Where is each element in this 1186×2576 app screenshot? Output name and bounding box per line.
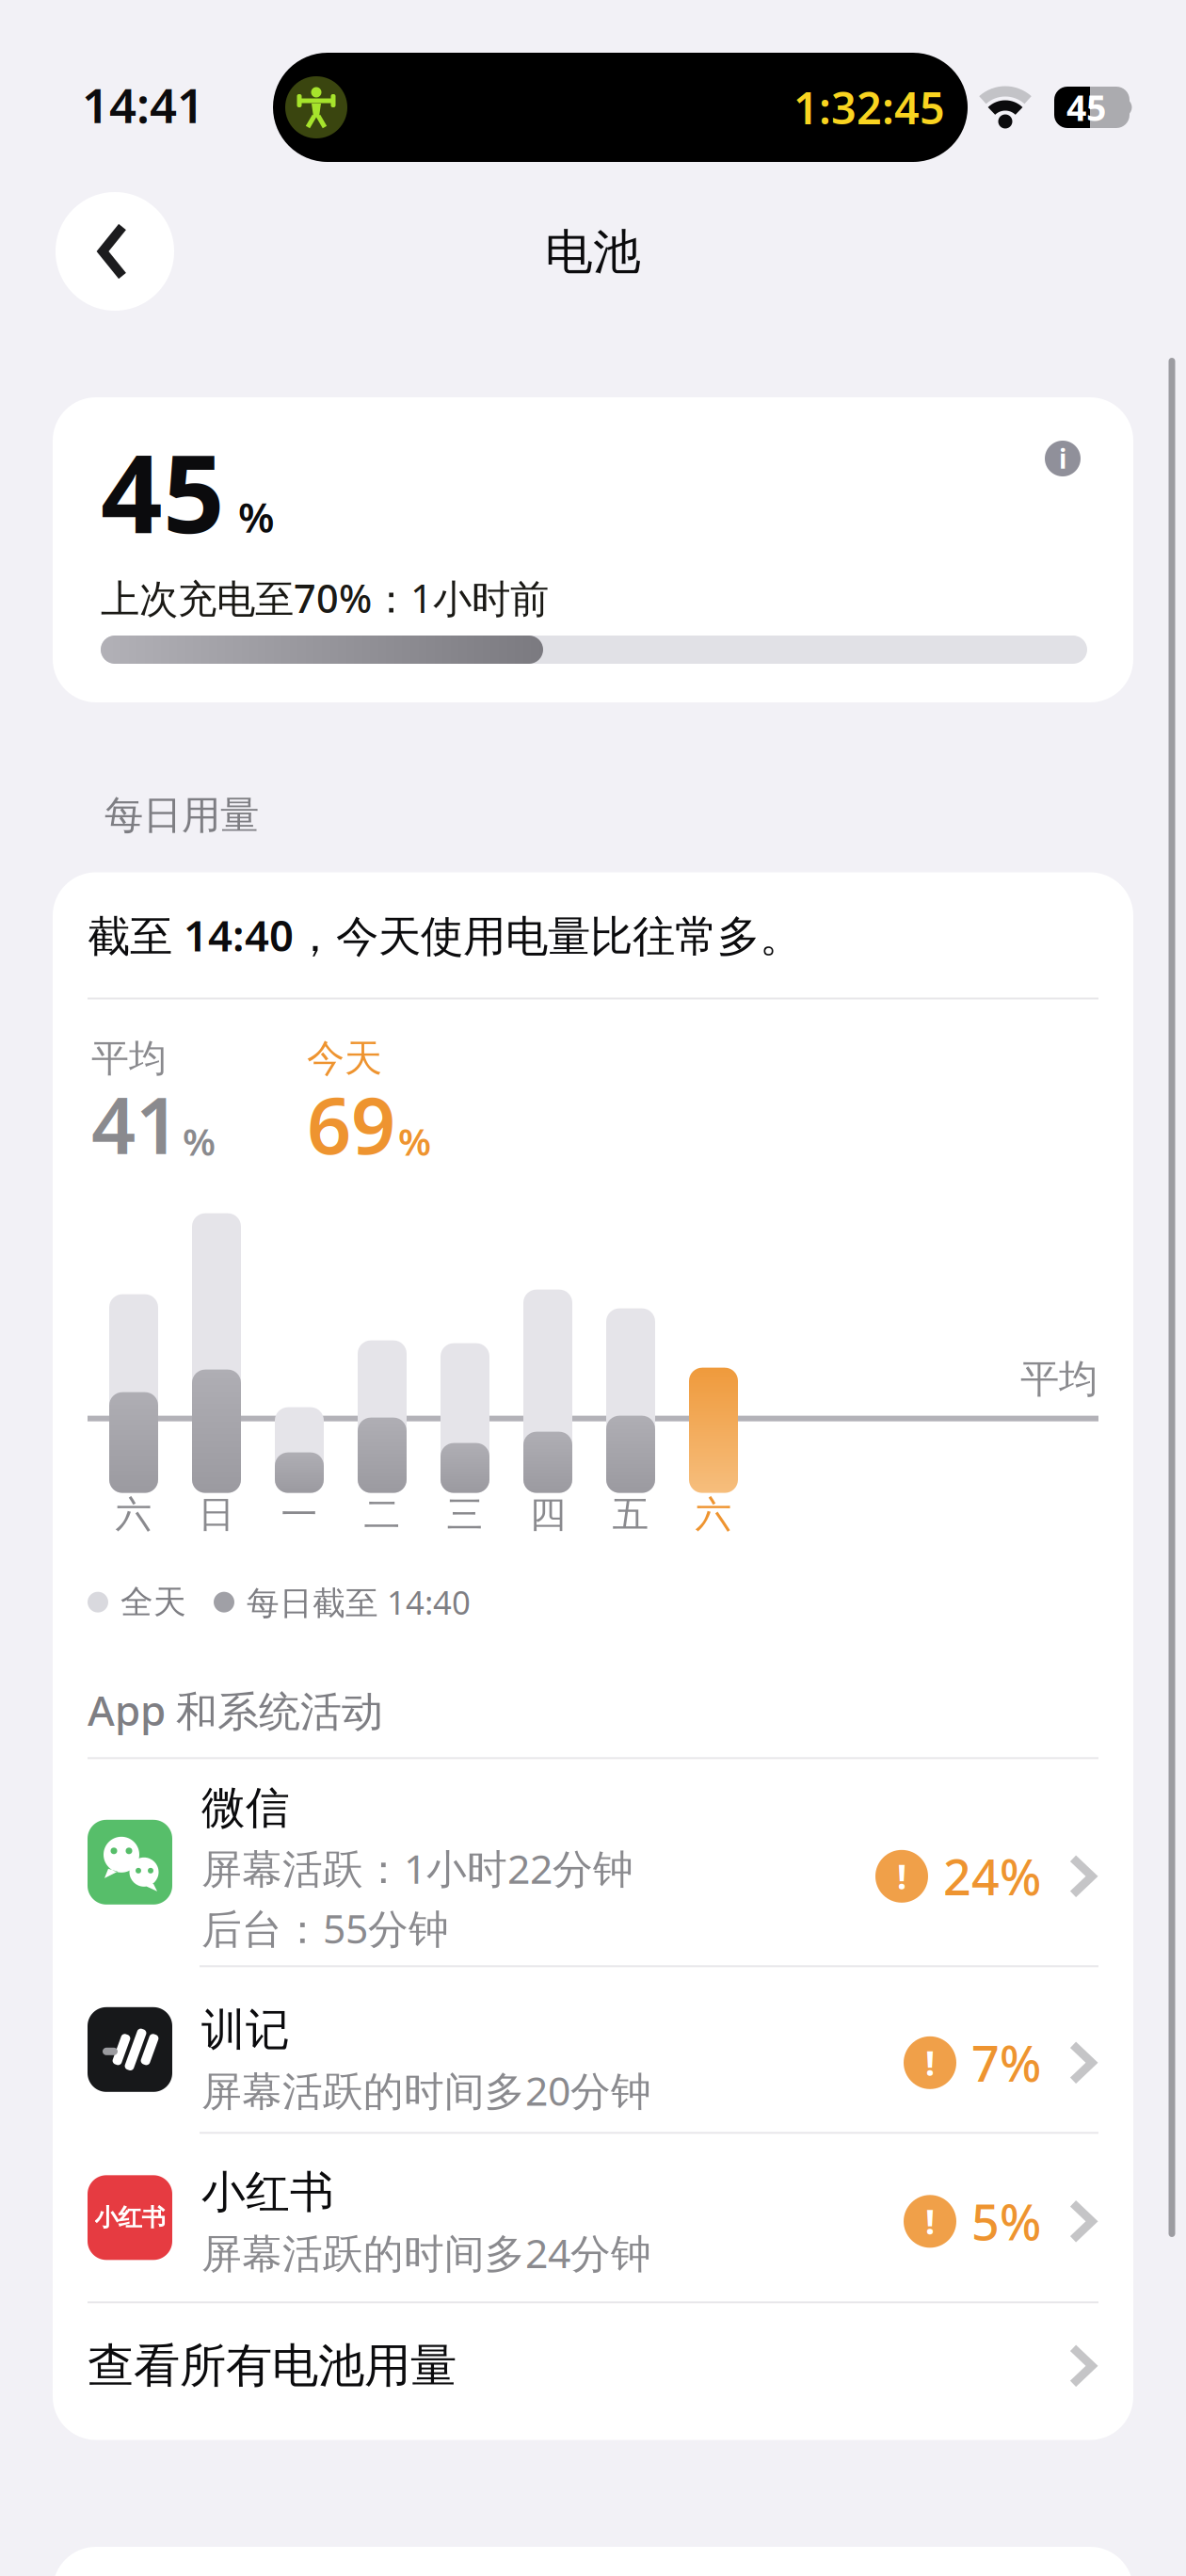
staticText: 小红书	[95, 2203, 165, 2232]
staticText: 69	[307, 1072, 395, 1176]
staticText: 屏幕活跃的时间多24分钟	[201, 2226, 651, 2279]
staticText: 截至 14:40，今天使用电量比往常多。	[88, 907, 802, 963]
staticText: 45	[101, 420, 225, 563]
staticText: %	[398, 1116, 431, 1166]
staticText: 14:41	[82, 73, 204, 136]
staticText: 六	[695, 1492, 732, 1537]
staticText: !	[897, 1854, 906, 1899]
staticText: 屏幕活跃：1小时22分钟	[201, 1841, 633, 1895]
staticText: 平均	[1020, 1355, 1098, 1403]
staticText: 后台：55分钟	[201, 1901, 449, 1955]
staticText: 五	[612, 1492, 649, 1537]
staticText: App 和系统活动	[88, 1682, 383, 1737]
staticText: 训记	[201, 2003, 290, 2057]
button[interactable]: About battery	[1045, 441, 1081, 476]
staticText: i	[1059, 441, 1066, 476]
button[interactable]: 查看所有电池用量	[88, 2303, 1098, 2440]
button[interactable]: 小红书	[88, 2134, 1098, 2301]
button[interactable]: Back	[56, 192, 174, 311]
staticText: 一	[281, 1492, 318, 1537]
staticText: 全天	[120, 1582, 186, 1622]
staticText: 每日用量	[104, 791, 259, 839]
staticText: %	[183, 1116, 216, 1166]
staticText: !	[925, 2040, 935, 2085]
staticText: 二	[364, 1492, 401, 1537]
staticText: !	[925, 2199, 935, 2244]
staticText: 每日截至 14:40	[247, 1580, 471, 1624]
button[interactable]: 训记	[88, 1967, 1098, 2132]
staticText: 今天	[307, 1035, 382, 1081]
staticText: 41	[91, 1072, 180, 1176]
staticText: 24%	[943, 1844, 1041, 1909]
staticText: 屏幕活跃的时间多20分钟	[201, 2064, 651, 2117]
button[interactable]: 微信	[88, 1759, 1098, 1965]
staticText: 7%	[971, 2030, 1041, 2095]
staticText: 平均	[91, 1035, 167, 1081]
staticText: 三	[447, 1492, 483, 1537]
staticText: 1:32:45	[793, 78, 945, 137]
staticText: 查看所有电池用量	[88, 2337, 457, 2394]
staticText: 电池	[545, 223, 641, 282]
staticText: 上次充电至70%：1小时前	[101, 572, 549, 624]
staticText: 四	[529, 1492, 566, 1537]
staticText: 微信	[201, 1781, 290, 1835]
staticText: 45	[1066, 84, 1106, 131]
staticText: 小红书	[201, 2165, 334, 2219]
staticText: 日	[198, 1492, 235, 1537]
staticText: 5%	[971, 2189, 1041, 2254]
staticText: 六	[115, 1492, 152, 1537]
staticText: %	[238, 489, 275, 544]
